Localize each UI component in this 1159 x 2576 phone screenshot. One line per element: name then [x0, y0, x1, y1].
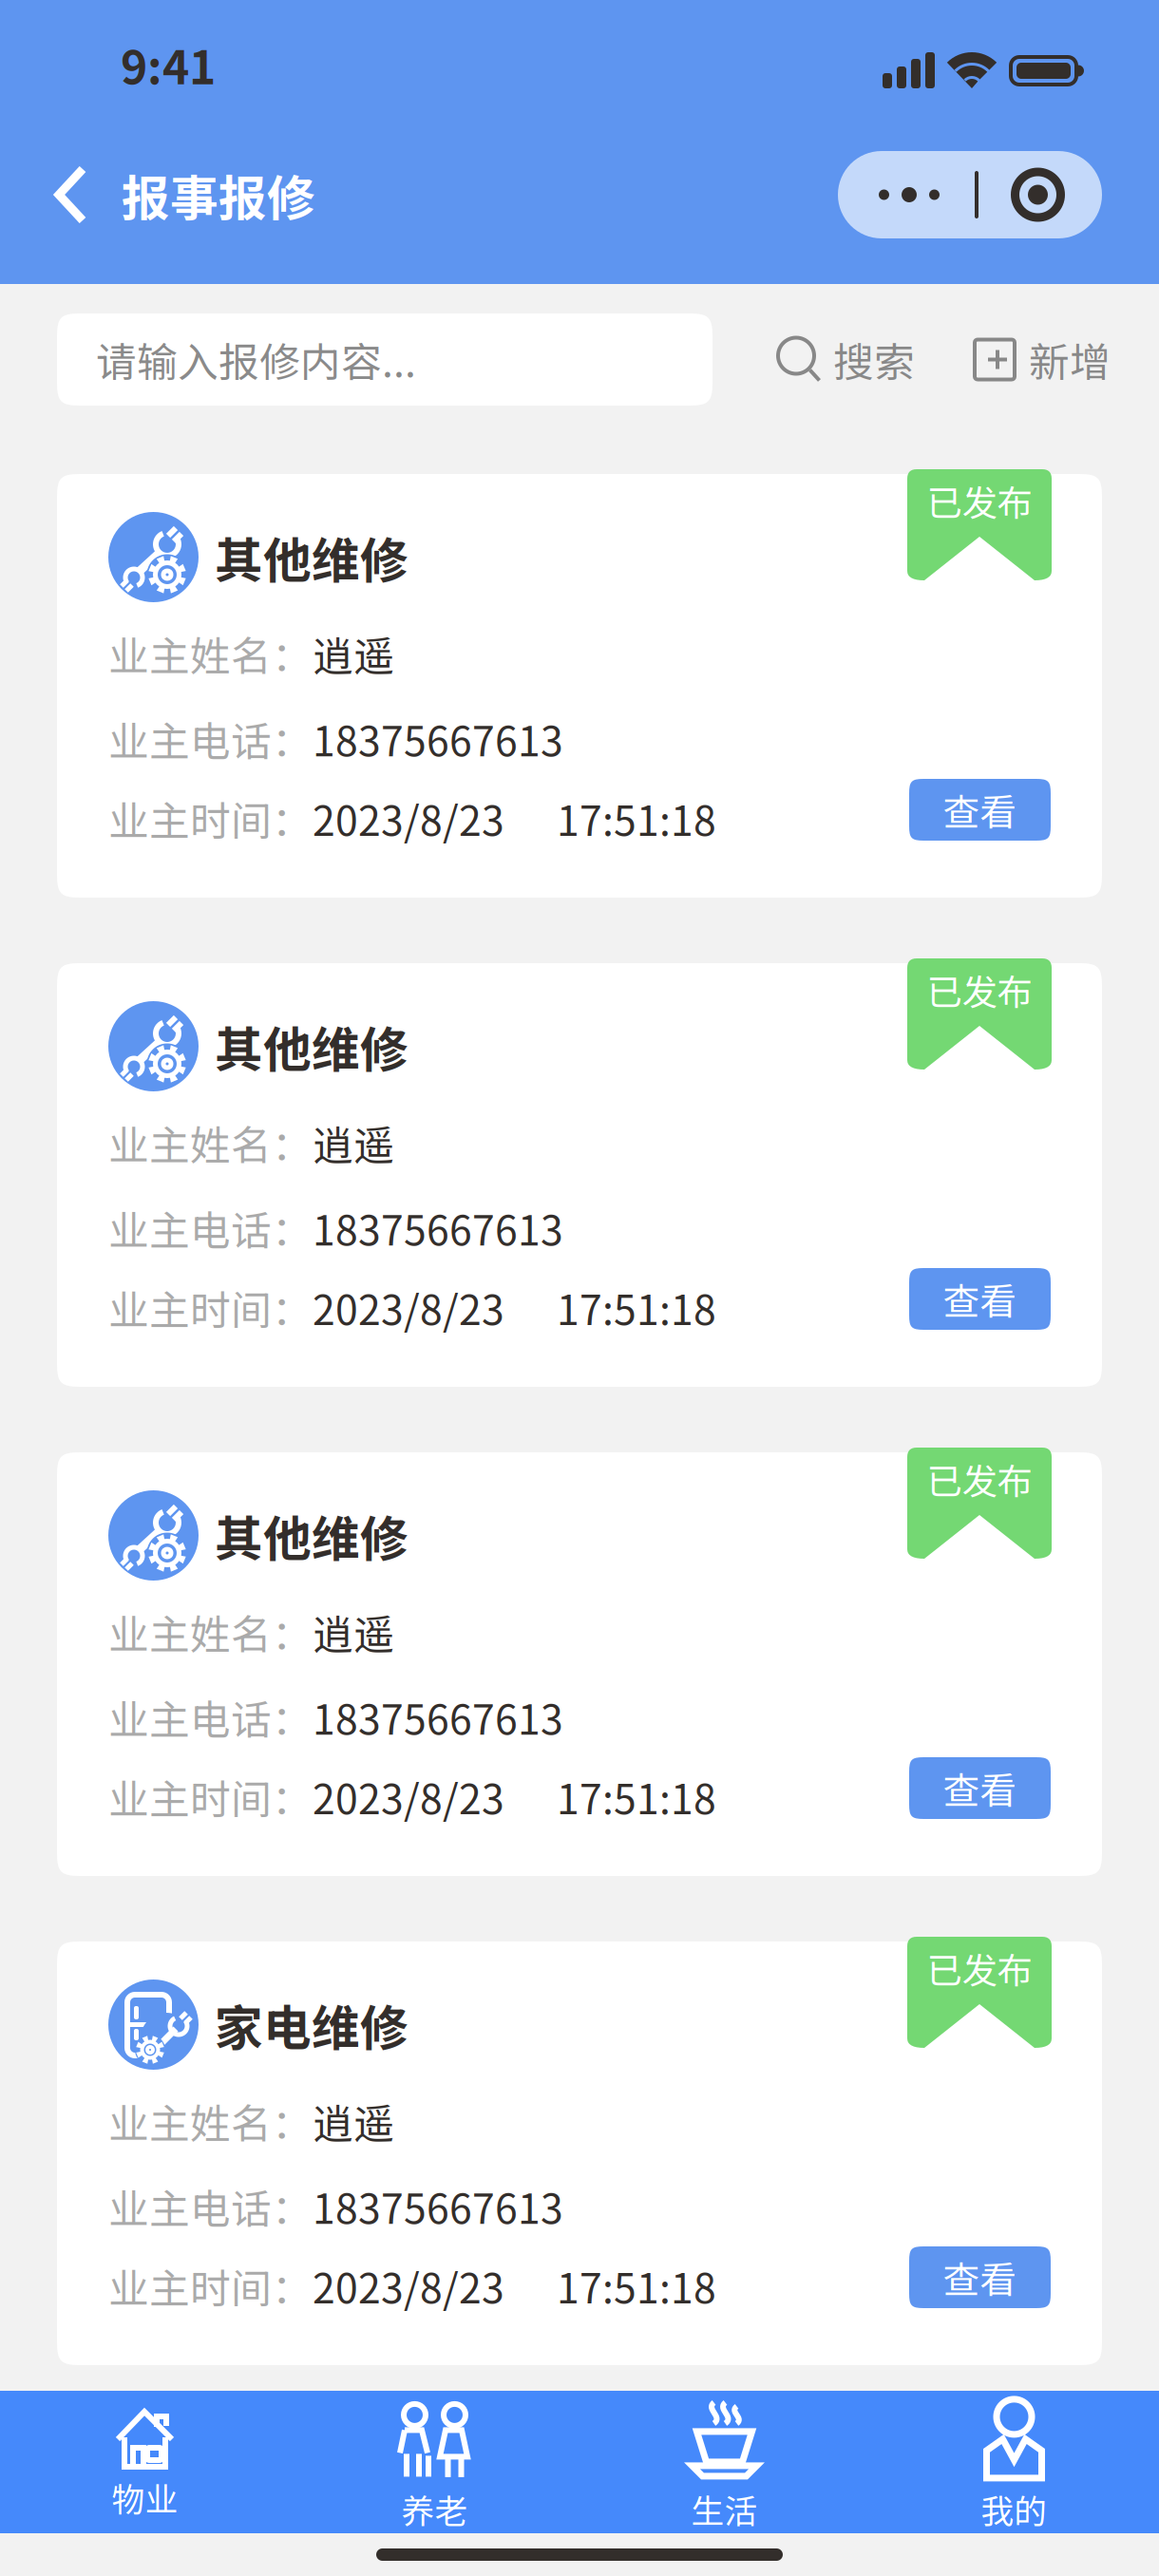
staticText: 业主电话：	[108, 709, 313, 768]
staticText: 其他维修	[215, 1501, 408, 1570]
staticText: 18375667613	[313, 709, 563, 768]
staticText: 逍遥	[313, 2092, 394, 2150]
staticText: 搜索	[833, 330, 915, 389]
staticText: 物业	[112, 2473, 178, 2521]
staticText: 业主时间：	[108, 789, 313, 848]
staticText: 9:41	[121, 31, 216, 97]
staticText: 业主时间：	[108, 1278, 313, 1337]
staticText: 17:51:18	[557, 2256, 716, 2315]
staticText: 17:51:18	[557, 1767, 716, 1826]
staticText: 18375667613	[313, 1199, 563, 1257]
staticText: 2023/8/23	[313, 1278, 504, 1337]
button[interactable]: 查看	[909, 1268, 1051, 1330]
button[interactable]: 查看	[909, 2246, 1051, 2308]
staticText: 请输入报修内容...	[96, 330, 416, 389]
staticText: 2023/8/23	[313, 789, 504, 848]
button[interactable]: 查看	[909, 1757, 1051, 1819]
button[interactable]: 我的	[869, 2391, 1159, 2533]
staticText: 报事报修	[122, 160, 315, 230]
staticText: 养老	[401, 2485, 468, 2533]
staticText: 查看	[943, 1762, 1017, 1815]
staticText: 查看	[943, 783, 1017, 836]
staticText: 业主电话：	[108, 1688, 313, 1746]
staticText: 查看	[943, 2251, 1017, 2304]
staticText: 业主电话：	[108, 2177, 313, 2236]
staticText: 已发布	[927, 1942, 1032, 1994]
staticText: 2023/8/23	[313, 1767, 504, 1826]
staticText: 查看	[943, 1272, 1017, 1326]
staticText: 业主姓名：	[108, 2092, 313, 2150]
staticText: 逍遥	[313, 1113, 394, 1172]
staticText: 业主姓名：	[108, 624, 313, 683]
staticText: 业主姓名：	[108, 1602, 313, 1661]
staticText: 已发布	[927, 964, 1032, 1015]
staticText: 其他维修	[215, 1011, 408, 1081]
staticText: 18375667613	[313, 1688, 563, 1746]
staticText: 18375667613	[313, 2177, 563, 2236]
button[interactable]: 养老	[290, 2391, 579, 2533]
button[interactable]: 返回	[24, 142, 118, 247]
staticText: 逍遥	[313, 624, 394, 683]
button[interactable]: 新增	[971, 313, 1104, 406]
staticText: 业主姓名：	[108, 1113, 313, 1172]
staticText: 业主时间：	[108, 2256, 313, 2315]
staticText: 已发布	[927, 475, 1032, 526]
staticText: 业主时间：	[108, 1767, 313, 1826]
staticText: 逍遥	[313, 1602, 394, 1661]
staticText: 新增	[1029, 330, 1111, 389]
staticText: 我的	[981, 2485, 1047, 2533]
staticText: 17:51:18	[557, 789, 716, 848]
staticText: 2023/8/23	[313, 2256, 504, 2315]
staticText: 已发布	[927, 1453, 1032, 1505]
button[interactable]: 生活	[579, 2391, 869, 2533]
staticText: 17:51:18	[557, 1278, 716, 1337]
button[interactable]: 物业	[0, 2391, 290, 2533]
button[interactable]: 查看	[909, 779, 1051, 841]
staticText: 业主电话：	[108, 1199, 313, 1257]
staticText: 家电维修	[215, 1990, 408, 2059]
button[interactable]: 更多选项	[838, 151, 1102, 238]
staticText: 生活	[691, 2485, 758, 2533]
button[interactable]: 搜索	[775, 313, 908, 406]
staticText: 其他维修	[215, 522, 408, 592]
